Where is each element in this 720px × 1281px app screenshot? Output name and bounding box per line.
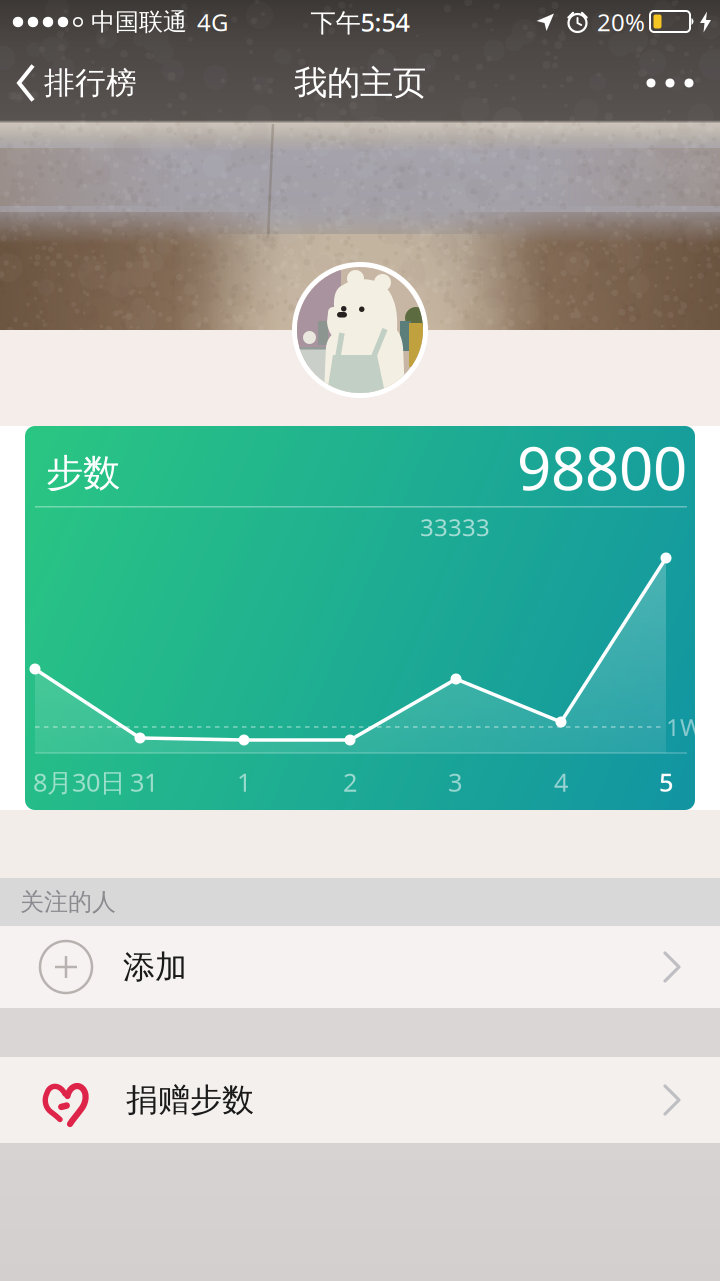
staticText: 步数 <box>46 450 120 496</box>
staticText: 5 <box>659 765 673 799</box>
staticText: 下午5:54 <box>310 5 409 39</box>
staticText: 8月30日 <box>33 765 125 799</box>
staticText: 添加 <box>123 947 187 987</box>
button[interactable]: 捐赠步数 <box>0 1057 720 1143</box>
staticText: 排行榜 <box>44 64 137 102</box>
staticText: 20% <box>597 6 645 38</box>
staticText: 1W <box>666 711 702 743</box>
staticText: 33333 <box>420 511 490 543</box>
staticText: 2 <box>343 765 357 799</box>
staticText: 3 <box>448 765 462 799</box>
staticText: 捐赠步数 <box>126 1080 254 1120</box>
staticText: 31 <box>130 765 158 799</box>
staticText: 关注的人 <box>20 887 116 917</box>
staticText: 4 <box>554 765 568 799</box>
staticText: 4G <box>197 6 228 38</box>
staticText: 98800 <box>517 427 687 507</box>
button[interactable]: 更多 <box>646 78 720 88</box>
button[interactable]: 排行榜 <box>0 63 137 103</box>
staticText: 中国联通 <box>91 7 187 37</box>
staticText: 1 <box>237 765 251 799</box>
button[interactable]: 添加 <box>0 926 720 1008</box>
staticText: 我的主页 <box>294 62 426 103</box>
